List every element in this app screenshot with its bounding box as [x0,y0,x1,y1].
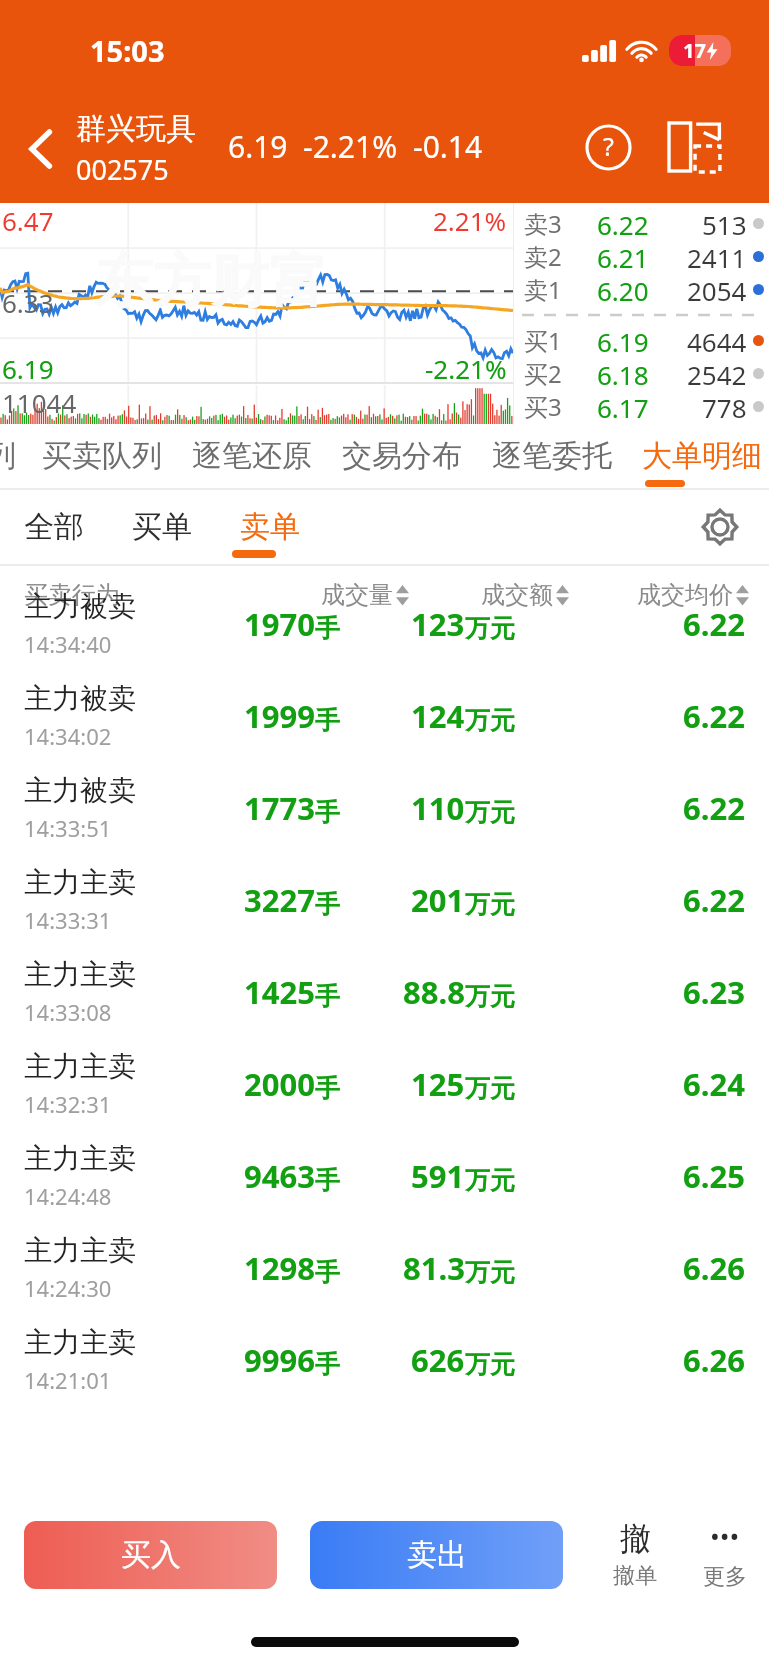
staticText: 全部 [24,508,84,546]
staticText: 手 [315,705,340,736]
button[interactable]: 逐笔委托 [492,437,612,475]
staticText: 主力主卖 [24,1325,136,1360]
staticText: 14:34:02 [24,721,112,751]
button[interactable]: 卖单 [240,508,300,546]
staticText: 3227 [244,879,315,921]
button[interactable]: 主力主卖 [0,946,769,1038]
staticText: 主力主卖 [24,1233,136,1268]
staticText: 6.19 [228,126,288,167]
button[interactable]: Picture in picture [658,111,730,183]
staticText: 6.22 [683,603,745,645]
staticText: 123 [411,603,465,645]
staticText: 6.25 [683,1155,745,1197]
button[interactable]: 卖2 [514,240,769,273]
staticText: 撤单 [613,1562,657,1590]
staticText: 主力被卖 [24,773,136,808]
button[interactable]: 列 [0,437,16,475]
staticText: 手 [315,1165,340,1196]
staticText: 撤 [620,1519,651,1558]
staticText: 万元 [465,981,515,1012]
button[interactable]: 交易分布 [342,437,462,475]
staticText: 万元 [465,1073,515,1104]
button[interactable]: 买1 [514,324,769,357]
staticText: 6.33 [2,285,54,320]
button[interactable]: 成交均价 [637,580,749,610]
button[interactable]: 卖3 [514,207,769,240]
staticText: 2542 [687,357,747,390]
button[interactable]: Help [577,116,639,178]
button[interactable]: Back [10,118,72,180]
staticText: -2.21% [303,126,398,167]
button[interactable]: 买单 [132,508,192,546]
staticText: -0.14 [413,126,483,167]
staticText: 14:33:51 [24,813,112,843]
button[interactable]: 主力被卖 [0,762,769,854]
staticText: 1970 [244,603,315,645]
staticText: 买2 [524,357,562,390]
staticText: 11044 [2,385,77,420]
button[interactable]: 卖1 [514,273,769,306]
staticText: 626 [411,1339,465,1381]
staticText: 逐笔委托 [492,437,612,475]
staticText: 6.24 [683,1063,745,1105]
button[interactable]: 主力被卖 [0,578,769,670]
staticText: 124 [411,695,465,737]
button[interactable]: 主力主卖 [0,1038,769,1130]
button[interactable]: 群兴玩具 [76,110,196,188]
staticText: 6.19 [2,351,54,386]
button[interactable]: 撤 [597,1519,673,1590]
staticText: 1999 [244,695,315,737]
staticText: 成交均价 [637,580,733,610]
staticText: 交易分布 [342,437,462,475]
button[interactable]: 主力主卖 [0,1314,769,1406]
staticText: 买1 [524,324,562,357]
button[interactable]: 主力主卖 [0,854,769,946]
staticText: 14:32:31 [24,1089,112,1119]
staticText: 卖3 [524,207,562,240]
staticText: 14:34:40 [24,629,112,659]
staticText: 主力主卖 [24,1049,136,1084]
staticText: 6.20 [597,273,649,306]
staticText: 14:33:08 [24,997,112,1027]
staticText: 万元 [465,1257,515,1288]
staticText: 卖2 [524,240,562,273]
staticText: 4644 [687,324,747,357]
staticText: 万元 [465,889,515,920]
staticText: 卖单 [240,508,300,546]
button[interactable]: 买入 [24,1521,277,1589]
staticText: 110 [411,787,465,829]
staticText: 手 [315,889,340,920]
button[interactable]: 买3 [514,390,769,423]
staticText: 9463 [244,1155,315,1197]
staticText: 买入 [121,1536,181,1574]
staticText: 778 [702,390,747,423]
staticText: 1773 [244,787,315,829]
button[interactable]: 买卖队列 [42,437,162,475]
staticText: 6.22 [683,695,745,737]
button[interactable]: 成交量 [321,580,409,610]
staticText: 125 [411,1063,465,1105]
staticText: 2.21% [433,203,507,238]
staticText: 002575 [76,151,169,188]
button[interactable]: Settings [691,498,749,556]
button[interactable]: 大单明细 [642,437,762,475]
staticText: 2411 [687,240,747,273]
staticText: ••• [710,1518,740,1553]
button[interactable]: ••• [685,1518,765,1591]
button[interactable]: 买2 [514,357,769,390]
staticText: 成交额 [481,580,553,610]
staticText: 6.22 [683,787,745,829]
button[interactable]: 主力主卖 [0,1222,769,1314]
staticText: 万元 [465,1165,515,1196]
staticText: 万元 [465,613,515,644]
staticText: 列 [0,437,16,475]
staticText: 6.21 [597,240,649,273]
button[interactable]: 逐笔还原 [192,437,312,475]
button[interactable]: 卖出 [310,1521,563,1589]
staticText: -2.21% [425,351,507,386]
button[interactable]: 主力被卖 [0,670,769,762]
button[interactable]: 主力主卖 [0,1130,769,1222]
button[interactable]: 全部 [24,508,84,546]
button[interactable]: 成交额 [481,580,569,610]
staticText: 14:24:30 [24,1273,112,1303]
